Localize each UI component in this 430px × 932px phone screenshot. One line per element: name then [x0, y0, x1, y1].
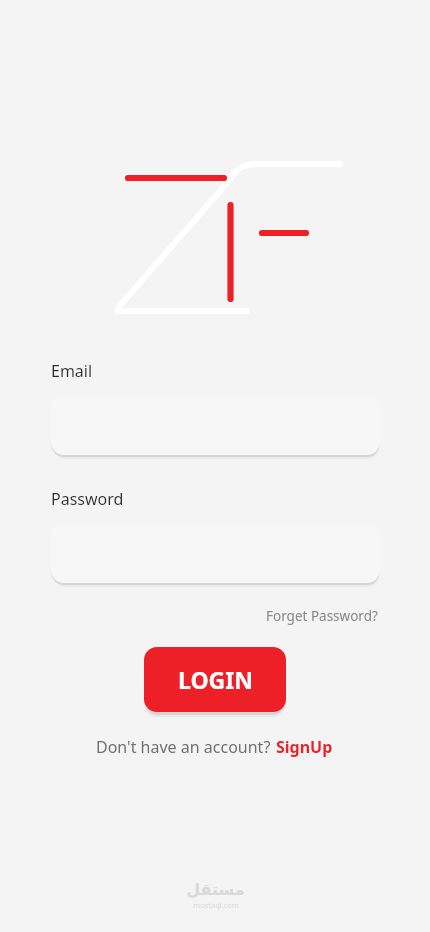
staticText: SignUp	[276, 736, 333, 758]
staticText: Email	[51, 360, 93, 382]
staticText: Don't have an account?	[96, 736, 275, 758]
staticText: Forget Password?	[266, 607, 378, 625]
staticText: مستقل	[186, 880, 245, 899]
button[interactable]: Forget Password?	[264, 605, 380, 627]
staticText: Password	[51, 488, 124, 510]
button[interactable]: SignUp	[275, 734, 334, 760]
staticText: mostaql.com	[193, 900, 239, 910]
staticText: LOGIN	[178, 664, 253, 695]
button[interactable]: LOGIN	[144, 647, 286, 712]
